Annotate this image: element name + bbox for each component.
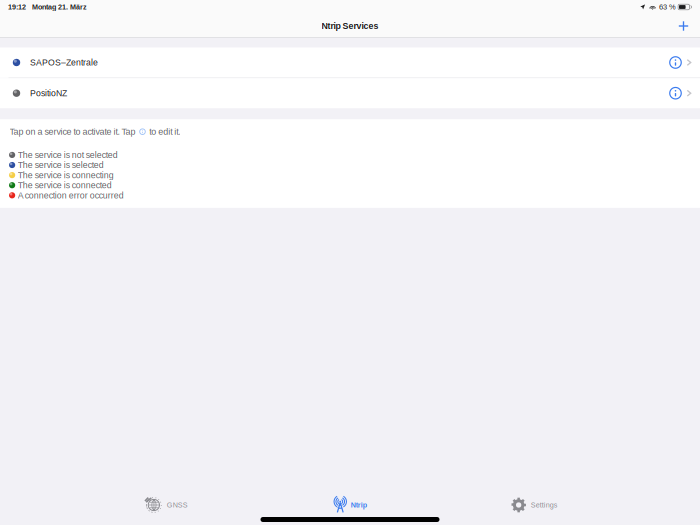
button[interactable]: Edit PositioNZ (665, 81, 685, 105)
staticText: 63 % (659, 3, 676, 11)
button[interactable]: Edit SAPOS–Zentrale (665, 50, 685, 74)
staticText: A connection error occurred (18, 190, 124, 200)
button[interactable]: GNSS (126, 491, 206, 519)
button[interactable]: PositioNZ (0, 78, 700, 108)
staticText: 19:12 (8, 3, 26, 11)
button[interactable]: Ntrip (310, 491, 390, 519)
staticText: The service is selected (18, 160, 104, 170)
staticText: SAPOS–Zentrale (30, 58, 98, 67)
staticText: to edit it. (149, 127, 180, 137)
staticText: Ntrip (351, 501, 367, 509)
staticText: The service is not selected (18, 150, 118, 160)
staticText: The service is connecting (18, 170, 114, 180)
staticText: Settings (531, 501, 558, 509)
button[interactable]: SAPOS–Zentrale (0, 47, 700, 77)
button[interactable]: Settings (494, 491, 574, 519)
staticText: Ntrip Services (321, 21, 378, 31)
button[interactable]: Add Ntrip service (670, 14, 696, 38)
staticText: The service is connected (18, 180, 112, 190)
staticText: Tap on a service to activate it. Tap (9, 127, 135, 137)
staticText: Montag 21. März (32, 3, 87, 11)
staticText: GNSS (167, 501, 188, 509)
staticText: PositioNZ (30, 88, 67, 98)
